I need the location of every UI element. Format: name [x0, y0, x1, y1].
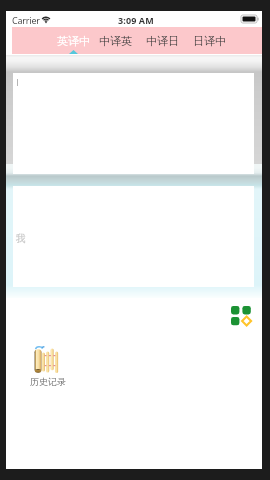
staticText: 3:09 AM — [118, 14, 154, 26]
button[interactable]: 英译中 — [51, 27, 95, 54]
staticText: 中译日 — [146, 34, 179, 48]
button[interactable]: 中译日 — [140, 27, 184, 54]
button[interactable]: 历史记录 — [28, 341, 78, 391]
staticText: Carrier — [12, 14, 40, 26]
staticText: 我 — [16, 232, 26, 245]
staticText: 中译英 — [99, 34, 132, 48]
staticText: 日译中 — [193, 34, 226, 48]
button[interactable]: Scan — [231, 306, 251, 325]
button[interactable]: 日译中 — [187, 27, 231, 54]
staticText: 历史记录 — [30, 376, 66, 387]
staticText: 英译中 — [57, 34, 90, 48]
button[interactable]: 中译英 — [93, 27, 137, 54]
